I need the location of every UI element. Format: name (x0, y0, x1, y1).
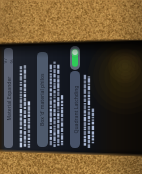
button[interactable]: Toggle setting (70, 46, 80, 70)
button[interactable]: Box 'd' material philos (37, 52, 48, 147)
staticText: Box 'd' material philos (39, 73, 46, 126)
button[interactable]: Material Expander (4, 48, 13, 148)
staticText: Quadrant Latchding (72, 85, 79, 133)
staticText: 97 % (1, 54, 15, 63)
button[interactable]: Quadrant Latchding (70, 71, 80, 148)
staticText: Material Expander (5, 76, 12, 120)
